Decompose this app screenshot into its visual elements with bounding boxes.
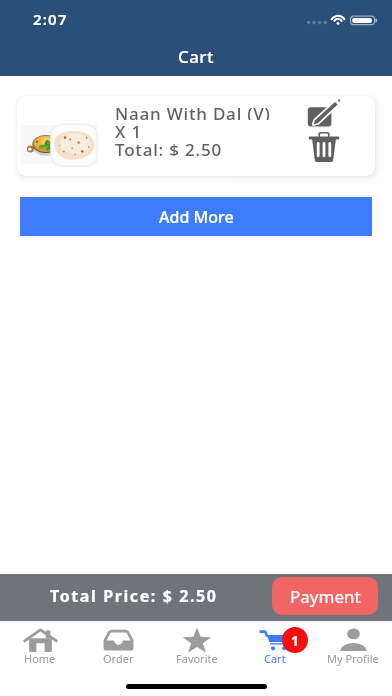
button[interactable]: Favorite — [158, 621, 236, 674]
staticText: Cart — [264, 651, 286, 666]
staticText: Add More — [159, 206, 234, 228]
button[interactable]: Payment — [272, 577, 378, 615]
button[interactable]: Cart — [236, 621, 314, 674]
button[interactable]: My Profile — [314, 621, 392, 674]
button[interactable]: Naan With Dal (V) — [17, 96, 375, 176]
staticText: Cart — [178, 45, 214, 68]
staticText: 1 — [291, 631, 300, 650]
staticText: Favorite — [176, 651, 218, 666]
button[interactable]: Order — [79, 621, 158, 674]
staticText: Naan With Dal (V) — [115, 102, 271, 120]
staticText: Total Price: $ 2.50 — [50, 585, 218, 607]
button[interactable]: Edit item — [303, 98, 343, 138]
staticText: Total: $ 2.50 — [115, 138, 222, 156]
staticText: My Profile — [327, 651, 379, 666]
staticText: Home — [24, 651, 56, 666]
staticText: Payment — [290, 585, 361, 608]
button[interactable]: Add More — [20, 197, 372, 236]
button[interactable]: Home — [0, 621, 79, 674]
staticText: 2:07 — [33, 9, 68, 29]
button[interactable]: Delete item — [304, 126, 344, 166]
staticText: Order — [103, 651, 134, 666]
staticText: X 1 — [115, 120, 142, 138]
